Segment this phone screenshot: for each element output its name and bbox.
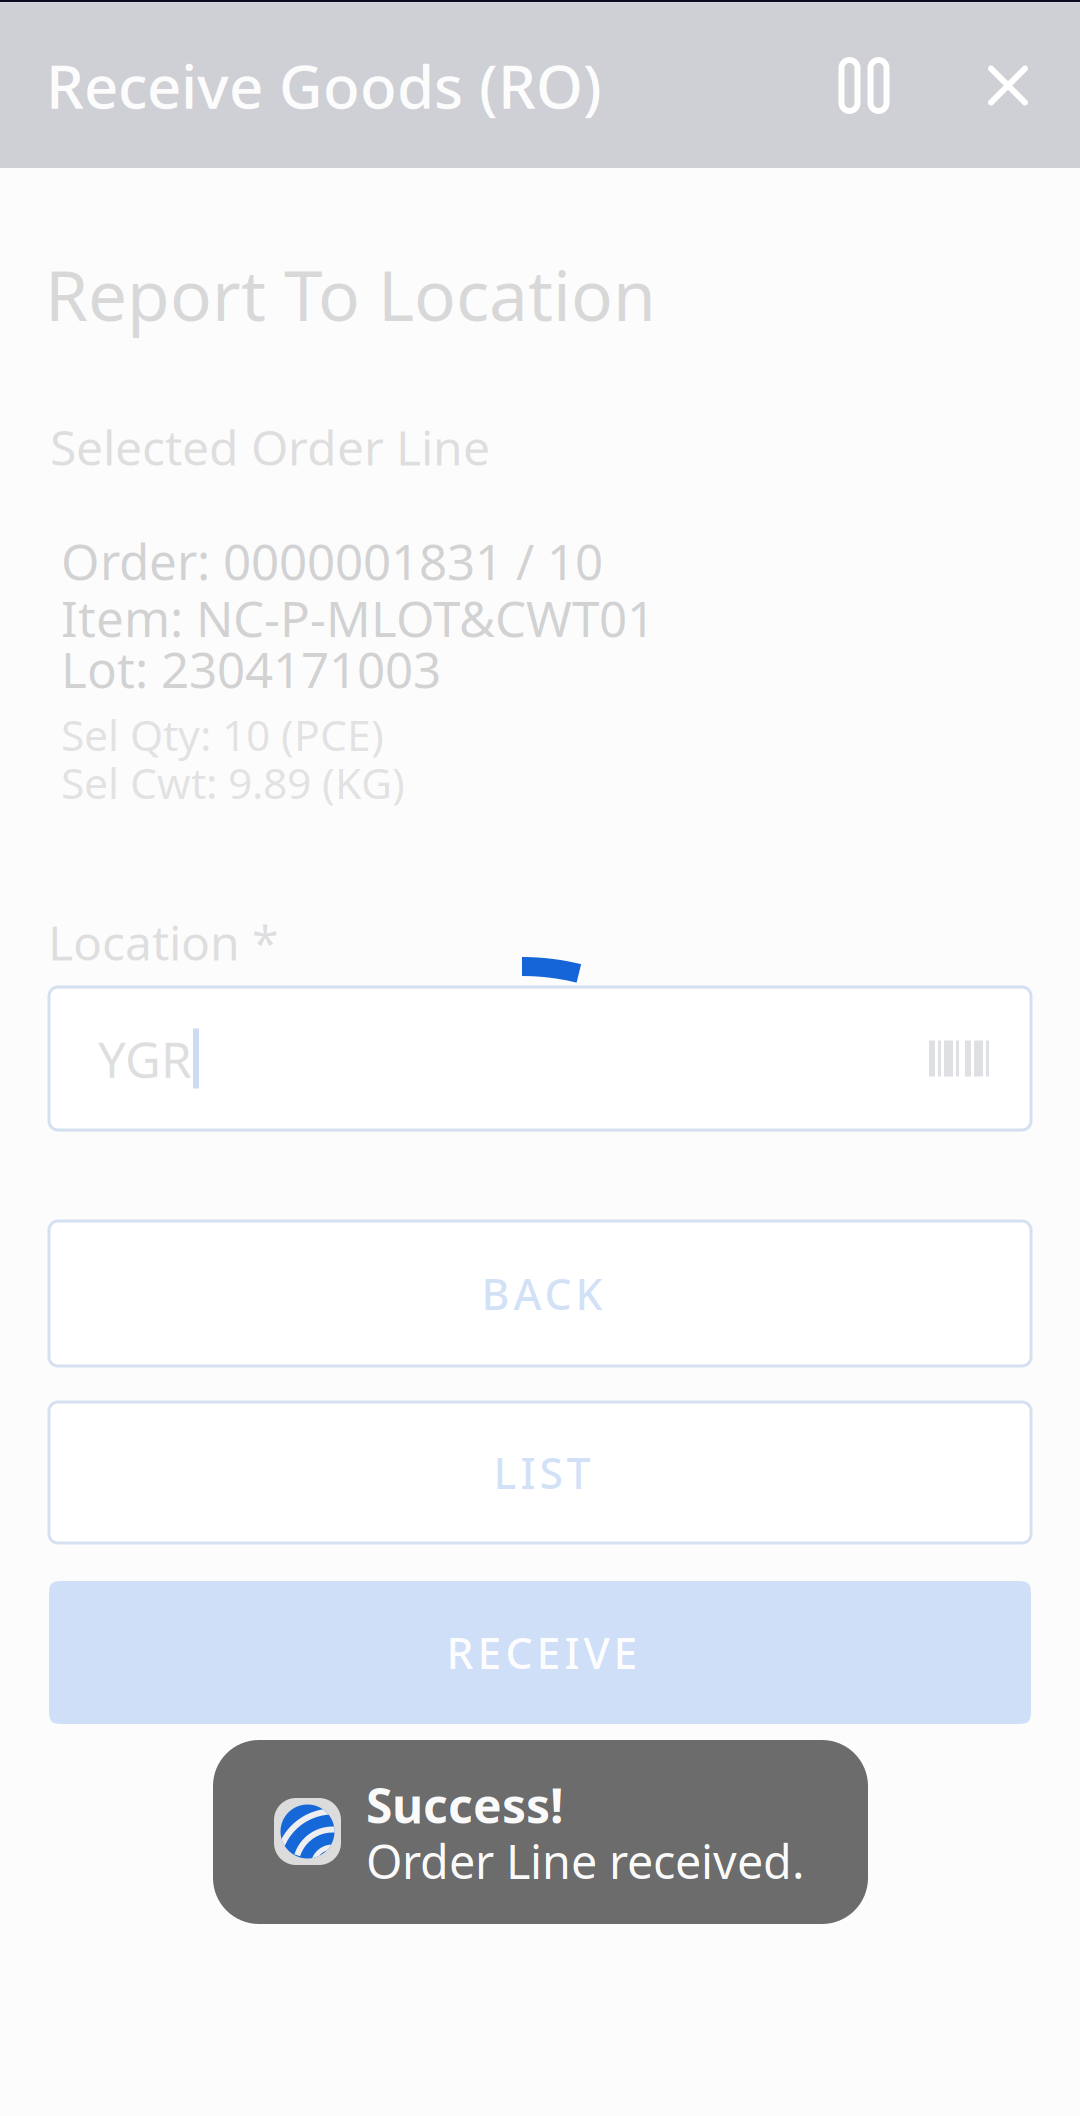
staticText: Order Line received.: [366, 1830, 805, 1892]
staticText: Item: NC-P-MLOT&CWT01: [61, 585, 655, 650]
staticText: Receive Goods (RO): [46, 46, 602, 125]
staticText: Sel Qty: 10 (PCE): [61, 706, 384, 763]
staticText: Success!: [366, 1773, 564, 1837]
button[interactable]: Close: [956, 29, 1060, 141]
staticText: Selected Order Line: [50, 415, 490, 479]
staticText: LIST: [493, 1444, 590, 1501]
staticText: BACK: [481, 1265, 602, 1322]
staticText: YGR: [98, 1026, 192, 1091]
staticText: RECEIVE: [446, 1624, 637, 1681]
staticText: Report To Location: [45, 248, 656, 340]
button[interactable]: LIST: [49, 1402, 1031, 1543]
staticText: Sel Cwt: 9.89 (KG): [61, 754, 405, 811]
button[interactable]: Split view: [812, 29, 916, 141]
button[interactable]: BACK: [49, 1221, 1031, 1366]
staticText: Order: 0000001831 / 10: [61, 528, 603, 593]
staticText: Location *: [48, 910, 278, 974]
button[interactable]: RECEIVE: [49, 1581, 1031, 1724]
staticText: Lot: 2304171003: [61, 636, 441, 701]
